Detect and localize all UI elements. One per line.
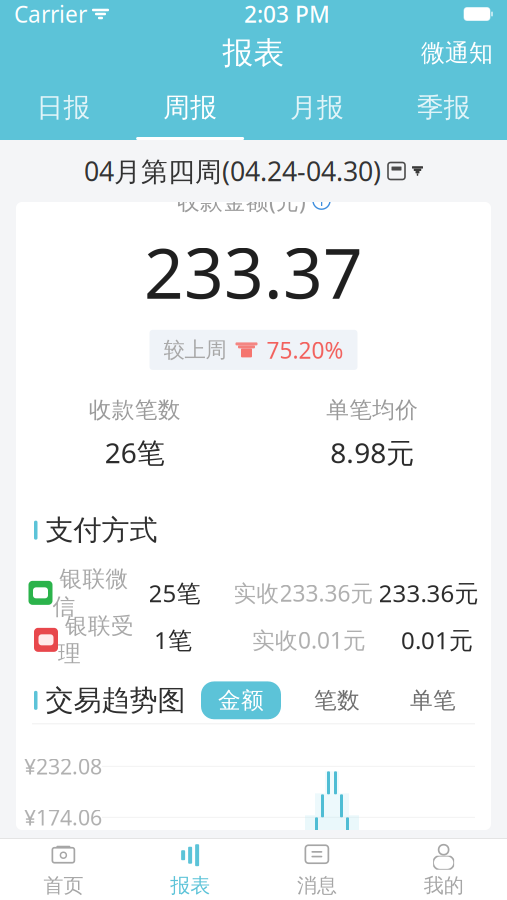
button[interactable]: 日报 (0, 78, 127, 140)
staticText: 季报 (417, 91, 471, 124)
staticText: 金额 (218, 686, 264, 714)
staticText: 银联受理 (58, 612, 134, 668)
button[interactable]: 我的 (380, 839, 507, 900)
button[interactable]: 周报 (127, 78, 254, 140)
staticText: 我的 (424, 873, 464, 898)
staticText: 交易趋势图 (37, 683, 185, 717)
staticText: 实收0.01元 (252, 625, 366, 655)
button[interactable]: 月报 (253, 78, 380, 140)
staticText: 收款金额(元) (177, 186, 306, 216)
staticText: 单笔均价 (326, 396, 418, 424)
staticText: 75.20% (266, 335, 343, 365)
staticText: 233.37 (144, 226, 363, 318)
staticText: 日报 (36, 91, 90, 124)
staticText: 较上周 (163, 337, 226, 363)
staticText: 消息 (297, 873, 337, 898)
staticText: 银联微信 (52, 565, 128, 621)
staticText: 收款笔数 (89, 396, 181, 424)
staticText: i (319, 191, 323, 210)
staticText: 2:03 PM (244, 0, 330, 29)
staticText: 0.01元 (401, 624, 473, 656)
button[interactable]: 消息 (253, 839, 380, 900)
staticText: 周报 (163, 91, 217, 124)
staticText: 1笔 (154, 624, 192, 656)
staticText: 微通知 (421, 38, 493, 68)
button[interactable]: 季报 (380, 78, 507, 140)
staticText: 支付方式 (37, 513, 157, 547)
button[interactable]: 单笔 (393, 681, 473, 719)
staticText: 笔数 (314, 686, 360, 714)
staticText: 实收233.36元 (233, 578, 373, 608)
staticText (87, 3, 91, 25)
staticText: 25笔 (148, 577, 200, 609)
button[interactable]: 笔数 (297, 681, 377, 719)
staticText: ¥232.08 (24, 752, 102, 780)
button[interactable]: 金额 (201, 681, 281, 719)
button[interactable]: 首页 (0, 839, 127, 900)
button[interactable]: 04月第四周(04.24-04.30) (74, 140, 433, 202)
staticText: 报表 (170, 873, 210, 898)
staticText: 8.98元 (330, 434, 414, 471)
staticText: 报表 (222, 34, 284, 72)
button[interactable]: 微通知 (407, 30, 507, 76)
staticText: 单笔 (410, 686, 456, 714)
staticText: 04月第四周(04.24-04.30) (84, 153, 381, 189)
staticText: ¥174.06 (24, 803, 102, 831)
staticText: 233.36元 (378, 577, 478, 609)
staticText: 首页 (43, 873, 83, 898)
button[interactable]: 报表 (127, 839, 254, 900)
staticText: 26笔 (105, 434, 165, 471)
staticText: Carrier (14, 0, 87, 29)
staticText: 月报 (290, 91, 344, 124)
